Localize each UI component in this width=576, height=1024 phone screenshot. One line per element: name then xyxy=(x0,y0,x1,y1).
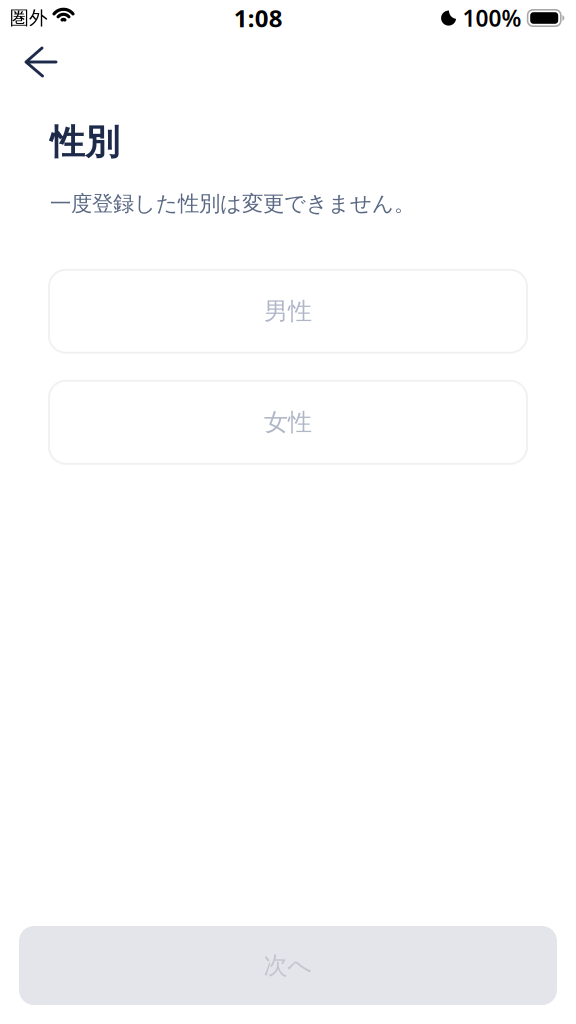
button[interactable]: Back xyxy=(0,38,70,92)
staticText: 女性 xyxy=(264,407,312,437)
button[interactable]: 女性 xyxy=(49,381,527,464)
button[interactable]: 男性 xyxy=(49,270,527,353)
staticText: 男性 xyxy=(264,296,312,326)
staticText: 1:08 xyxy=(234,2,283,34)
staticText: 100% xyxy=(463,3,522,33)
staticText: 圏外 xyxy=(10,6,48,29)
staticText: 次へ xyxy=(263,951,312,980)
staticText: 一度登録した性別は変更できません。 xyxy=(50,191,415,217)
staticText: 性別 xyxy=(50,121,120,164)
